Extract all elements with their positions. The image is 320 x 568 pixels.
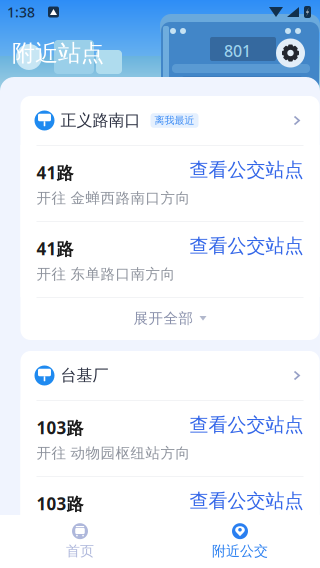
staticText: 开往 动物园枢纽站方向 <box>36 444 190 462</box>
staticText: 801 <box>224 40 251 62</box>
staticText: 查看公交站点 <box>189 413 303 437</box>
staticText: 开往 前门方向 <box>36 520 130 538</box>
staticText: 查看公交站点 <box>189 234 303 258</box>
staticText: 41路 <box>36 237 73 260</box>
button[interactable]: 41路 <box>20 221 319 297</box>
staticText: 开往 金蝉西路南口方向 <box>36 189 190 207</box>
button[interactable]: 103路 <box>20 476 319 552</box>
button[interactable]: 附近公交 <box>160 515 320 568</box>
staticText: 查看公交站点 <box>189 489 303 513</box>
staticText: 103路 <box>36 416 83 439</box>
button[interactable]: 41路 <box>20 145 319 221</box>
staticText: 附近站点 <box>12 38 104 67</box>
staticText: 开往 东单路口南方向 <box>36 265 175 283</box>
staticText: 附近公交 <box>212 542 268 560</box>
staticText: 展开全部 <box>133 309 193 328</box>
button[interactable]: 台基厂 <box>20 351 319 400</box>
staticText: 查看公交站点 <box>189 158 303 182</box>
staticText: 1:38 <box>7 2 35 22</box>
button[interactable]: 正义路南口 <box>20 96 319 145</box>
button[interactable]: 展开全部 <box>20 297 319 340</box>
staticText: 首页 <box>66 542 94 560</box>
button[interactable]: 首页 <box>0 515 160 568</box>
staticText: 台基厂 <box>60 365 108 386</box>
staticText: 41路 <box>36 161 73 184</box>
button[interactable]: 103路 <box>20 400 319 476</box>
staticText: 正义路南口 <box>60 110 140 131</box>
staticText: 离我最近 <box>154 114 194 127</box>
button[interactable]: 设置 <box>276 38 305 67</box>
staticText: 103路 <box>36 492 83 515</box>
